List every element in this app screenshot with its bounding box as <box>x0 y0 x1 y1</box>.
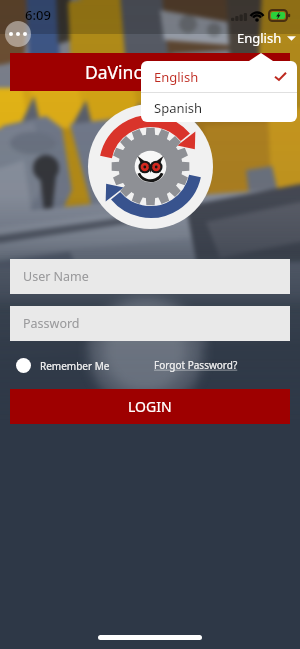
staticText: Spanish <box>154 99 203 117</box>
button[interactable]: User Name <box>10 259 290 294</box>
button[interactable]: Remember Me <box>16 358 110 373</box>
staticText: 6:09 <box>25 6 51 24</box>
button[interactable]: English <box>141 61 297 92</box>
staticText: English <box>237 29 282 47</box>
button[interactable]: English <box>237 29 296 47</box>
staticText: LOGIN <box>128 397 172 416</box>
staticText: User Name <box>23 268 89 285</box>
button[interactable]: More options <box>5 21 31 47</box>
button[interactable]: Spanish <box>141 93 297 123</box>
staticText: English <box>154 68 199 86</box>
button[interactable]: Forgot Password? <box>154 358 290 372</box>
staticText: Password <box>23 315 80 332</box>
staticText: DaVinci Roofing <box>85 60 216 84</box>
button[interactable]: LOGIN <box>10 389 290 424</box>
button[interactable]: Password <box>10 306 290 341</box>
staticText: Remember Me <box>40 359 110 373</box>
